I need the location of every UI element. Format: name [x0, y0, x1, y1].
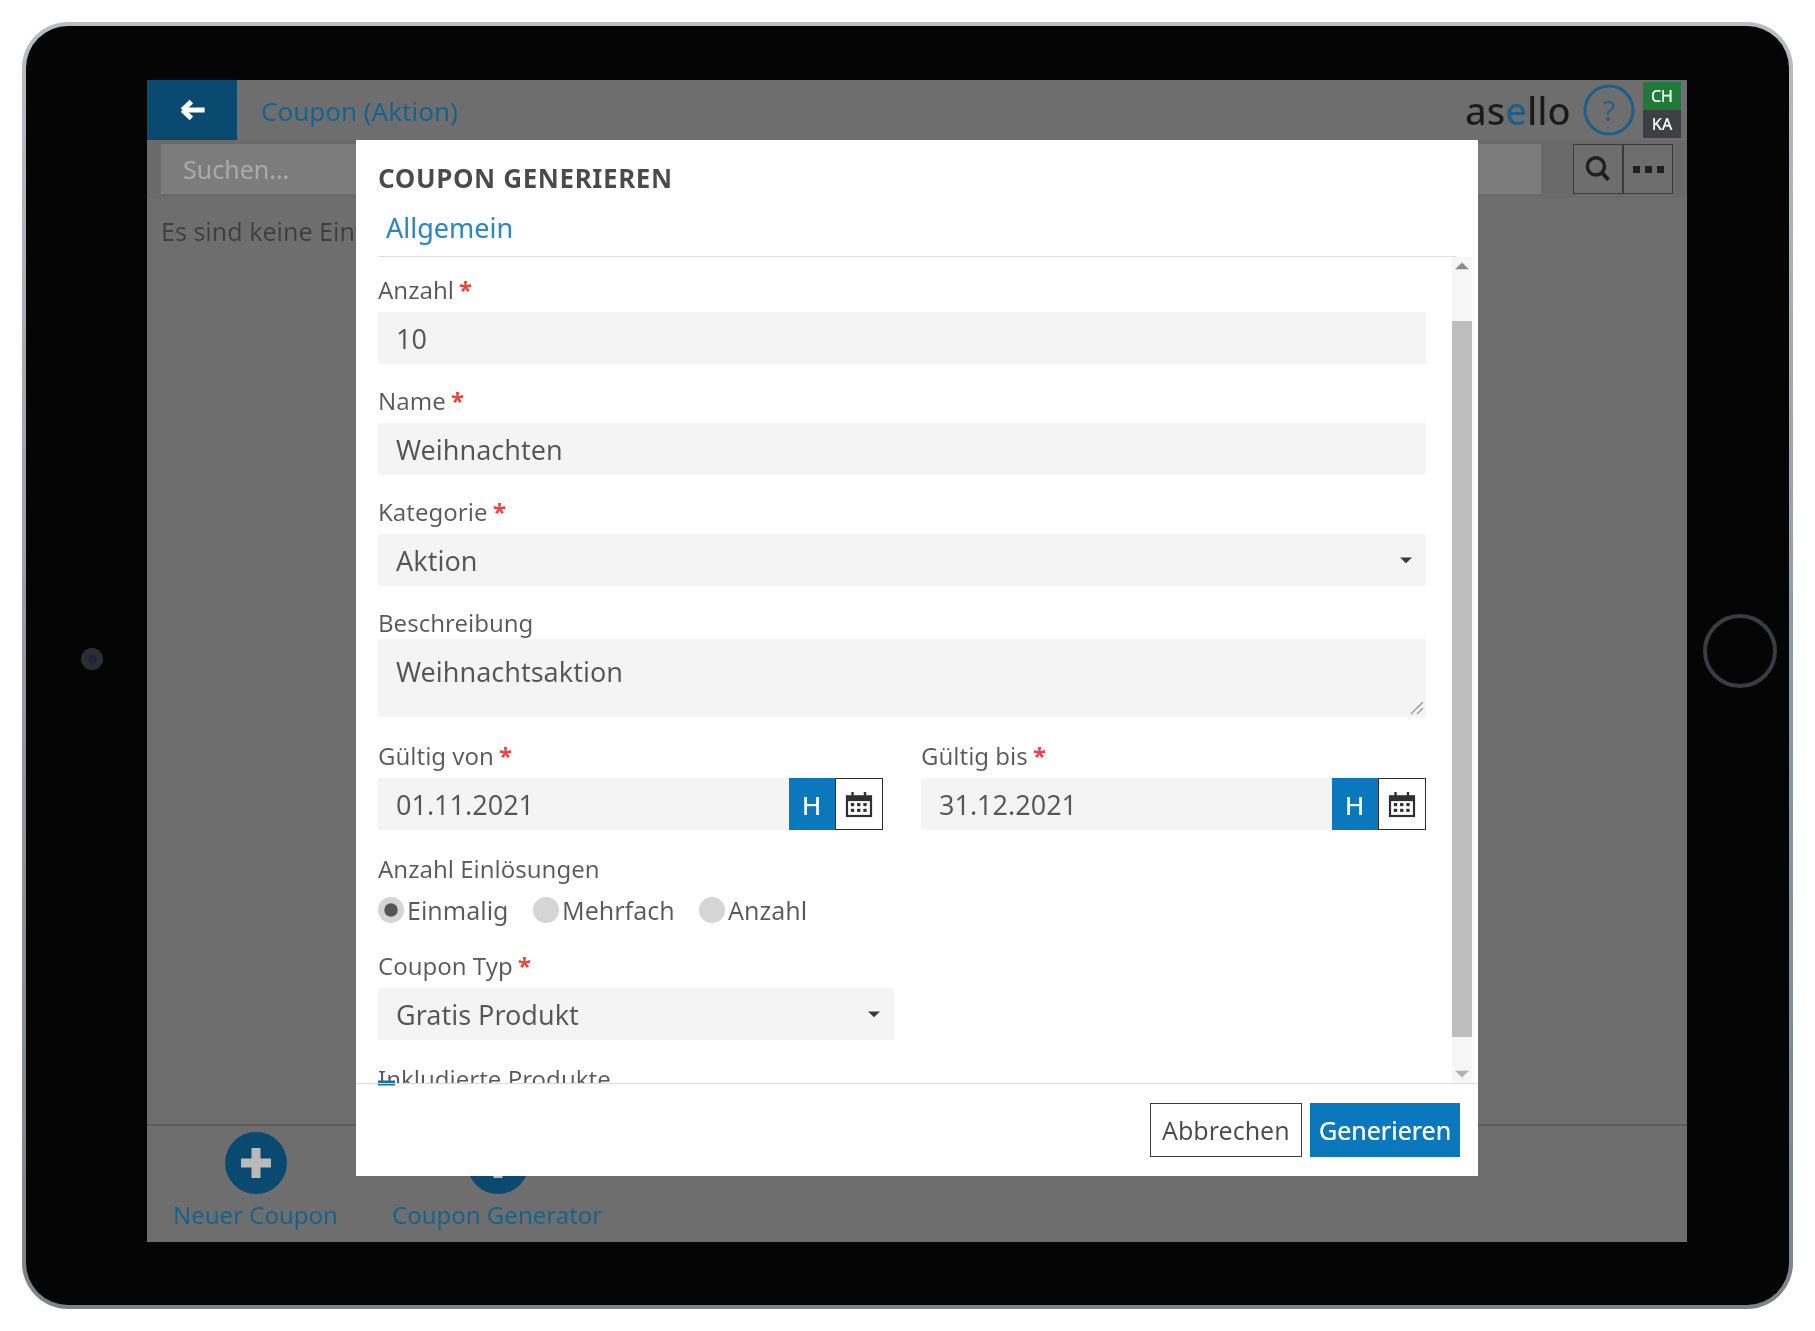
button[interactable]: Mehrfach — [533, 893, 675, 927]
button[interactable]: Aktion — [378, 534, 1426, 586]
staticText: Anzahl Einlösungen — [378, 852, 600, 885]
staticText: Gratis Produkt — [396, 996, 579, 1033]
button[interactable]: H — [1332, 778, 1378, 830]
staticText: Anzahl — [728, 893, 808, 927]
staticText: Allgemein — [386, 209, 514, 246]
staticText: Anzahl — [378, 273, 454, 306]
staticText: Weihnachten — [396, 431, 563, 468]
button[interactable]: Abbrechen — [1150, 1103, 1302, 1157]
staticText: Coupon Typ — [378, 949, 513, 982]
staticText: * — [518, 949, 532, 982]
staticText: * — [493, 495, 507, 528]
staticText: KA — [1652, 113, 1673, 135]
staticText: Neuer Coupon — [173, 1198, 338, 1231]
staticText: Kategorie — [378, 495, 488, 528]
staticText: Coupon Generator — [392, 1198, 603, 1231]
staticText: Mehrfach — [562, 893, 675, 927]
staticText: Abbrechen — [1162, 1113, 1290, 1147]
staticText: Gültig von — [378, 739, 494, 772]
staticText: * — [459, 273, 473, 306]
button[interactable]: Suchen... — [161, 144, 1541, 194]
button[interactable]: More options — [1623, 144, 1673, 194]
button[interactable]: 01.11.2021 — [378, 778, 789, 830]
staticText: Einmalig — [407, 893, 509, 927]
button[interactable]: Generieren — [1310, 1103, 1460, 1157]
button[interactable]: Allgemein — [386, 209, 514, 246]
button[interactable]: Open calendar — [1378, 778, 1426, 830]
staticText: Inkludierte Produkte — [378, 1062, 611, 1083]
button[interactable]: Coupon Generator — [386, 1132, 609, 1231]
button[interactable]: 10 — [378, 312, 1426, 364]
button[interactable]: Search — [1573, 144, 1623, 194]
staticText: H — [802, 787, 822, 822]
staticText: Suchen... — [183, 152, 290, 186]
button[interactable]: Weihnachten — [378, 423, 1426, 475]
staticText: COUPON GENERIEREN — [378, 160, 673, 195]
staticText: Coupon (Aktion) — [261, 93, 458, 128]
staticText: Name — [378, 384, 446, 417]
staticText: * — [451, 384, 465, 417]
staticText: ? — [1603, 91, 1616, 129]
button[interactable]: Einmalig — [378, 893, 509, 927]
staticText: Weihnachtsaktion — [396, 653, 623, 690]
staticText: 10 — [396, 320, 427, 357]
button[interactable]: Neuer Coupon — [167, 1132, 344, 1231]
staticText: 31.12.2021 — [939, 786, 1078, 823]
staticText: CH — [1651, 85, 1673, 107]
button[interactable]: Back — [147, 80, 237, 140]
button[interactable]: 31.12.2021 — [921, 778, 1332, 830]
staticText: H — [1345, 787, 1365, 822]
button[interactable]: Anzahl — [699, 893, 808, 927]
button[interactable]: Open calendar — [835, 778, 883, 830]
staticText: * — [499, 739, 513, 772]
staticText: 01.11.2021 — [396, 786, 535, 823]
staticText: Generieren — [1319, 1113, 1452, 1147]
staticText: Es sind keine Einträge vorhanden — [161, 214, 552, 248]
staticText: Aktion — [396, 542, 478, 579]
button[interactable]: Help — [1583, 84, 1635, 136]
staticText: * — [1033, 739, 1047, 772]
button[interactable]: H — [789, 778, 835, 830]
staticText: Beschreibung — [378, 606, 534, 639]
button[interactable]: Gratis Produkt — [378, 988, 894, 1040]
staticText: asello — [1465, 84, 1571, 136]
staticText: Gültig bis — [921, 739, 1028, 772]
button[interactable]: Weihnachtsaktion — [378, 639, 1426, 717]
